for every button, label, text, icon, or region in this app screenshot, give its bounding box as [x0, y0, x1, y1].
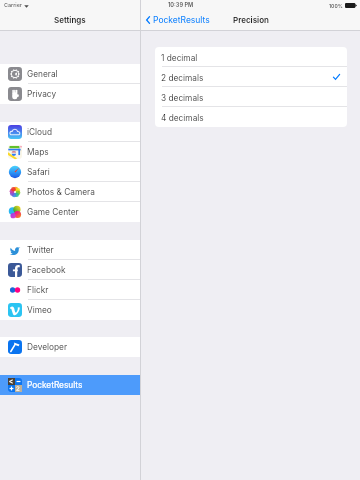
staticText: Twitter	[27, 245, 54, 255]
button[interactable]: iCloud	[0, 122, 140, 142]
staticText: Flickr	[27, 285, 49, 295]
button[interactable]: 1 decimal	[155, 47, 347, 67]
button[interactable]: Facebook	[0, 260, 140, 280]
button[interactable]: Twitter	[0, 240, 140, 260]
button[interactable]: Privacy	[0, 84, 140, 104]
staticText: Safari	[27, 167, 50, 177]
staticText: iCloud	[27, 127, 53, 137]
staticText: Carrier	[4, 2, 22, 9]
button[interactable]: Photos & Camera	[0, 182, 140, 202]
staticText: PocketResults	[27, 380, 83, 390]
button[interactable]: Game Center	[0, 202, 140, 222]
button[interactable]: Back to PocketResults	[146, 15, 210, 25]
button[interactable]: Developer	[0, 337, 140, 357]
button[interactable]: 4 decimals	[155, 107, 347, 127]
staticText: Facebook	[27, 265, 66, 275]
staticText: 2 decimals	[161, 73, 204, 83]
staticText: Settings	[54, 15, 86, 25]
button[interactable]: 3 decimals	[155, 87, 347, 107]
staticText: General	[27, 69, 58, 79]
staticText: Photos & Camera	[27, 187, 95, 197]
staticText: Vimeo	[27, 305, 52, 315]
staticText: Privacy	[27, 89, 57, 99]
button[interactable]: PocketResults	[0, 375, 140, 395]
button[interactable]: General	[0, 64, 140, 84]
button[interactable]: 2 decimals	[155, 67, 347, 87]
button[interactable]: Safari	[0, 162, 140, 182]
staticText: Developer	[27, 342, 68, 352]
button[interactable]: Vimeo	[0, 300, 140, 320]
staticText: 3 decimals	[161, 93, 204, 103]
staticText: 10:39 PM	[168, 2, 194, 9]
staticText: 4 decimals	[161, 113, 204, 123]
staticText: Maps	[27, 147, 49, 157]
staticText: Game Center	[27, 207, 79, 217]
staticText: PocketResults	[153, 15, 210, 25]
staticText: 1 decimal	[161, 53, 198, 63]
staticText: Precision	[233, 15, 269, 25]
button[interactable]: Flickr	[0, 280, 140, 300]
staticText: 100%	[329, 3, 343, 9]
button[interactable]: Maps	[0, 142, 140, 162]
